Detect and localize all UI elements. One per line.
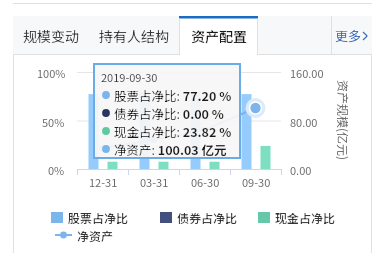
button[interactable]: 股票占净比 bbox=[51, 209, 129, 225]
button[interactable]: 债券占净比 bbox=[160, 209, 238, 225]
staticText: 债券占净比: 0.00 % bbox=[114, 104, 224, 122]
staticText: 债券占净比 bbox=[177, 209, 238, 225]
staticText: 现金占净比: 23.82 % bbox=[114, 122, 232, 140]
button[interactable]: 更多 bbox=[331, 16, 372, 55]
staticText: 资产配置 bbox=[191, 26, 247, 46]
staticText: 净资产 bbox=[77, 227, 114, 243]
staticText: 2019-09-30 bbox=[101, 69, 158, 85]
button[interactable]: 净资产 bbox=[55, 227, 114, 243]
staticText: 160.00 bbox=[290, 65, 324, 81]
button[interactable]: 规模变动 bbox=[13, 16, 88, 55]
staticText: 50% bbox=[42, 114, 65, 130]
staticText: 更多 bbox=[335, 26, 362, 45]
button[interactable]: 持有人结构 bbox=[88, 16, 179, 55]
staticText: 规模变动 bbox=[23, 26, 79, 46]
staticText: 06-30 bbox=[191, 174, 220, 190]
staticText: 资产规模(亿元) bbox=[336, 80, 352, 161]
staticText: 股票占净比 bbox=[68, 209, 129, 225]
staticText: 净资产: 100.03 亿元 bbox=[114, 140, 227, 158]
staticText: 股票占净比: 77.20 % bbox=[114, 86, 232, 104]
staticText: 0% bbox=[48, 162, 65, 178]
staticText: 持有人结构 bbox=[99, 26, 169, 46]
button[interactable]: 现金占净比 bbox=[258, 209, 336, 225]
staticText: 03-31 bbox=[140, 174, 169, 190]
staticText: 09-30 bbox=[242, 174, 271, 190]
staticText: 0.00 bbox=[290, 162, 312, 178]
button[interactable]: 资产配置 bbox=[179, 16, 258, 55]
staticText: 现金占净比 bbox=[275, 209, 336, 225]
staticText: 100% bbox=[37, 65, 65, 81]
staticText: 80.00 bbox=[290, 114, 318, 130]
staticText: 12-31 bbox=[89, 174, 118, 190]
